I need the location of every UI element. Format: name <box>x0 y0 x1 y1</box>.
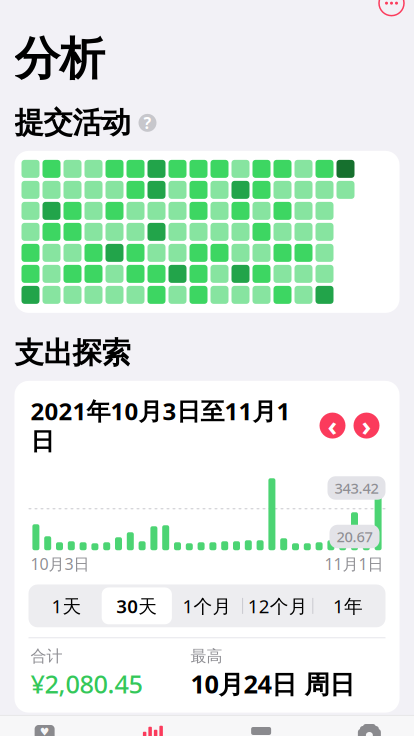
button[interactable]: 设置 <box>315 721 414 736</box>
staticText: ‹ <box>327 408 337 443</box>
staticText: 合计 <box>30 646 62 666</box>
staticText: ♥ <box>40 726 50 736</box>
staticText: 343.42 <box>334 478 378 498</box>
button[interactable]: 1天 <box>31 587 102 624</box>
button[interactable]: ♥ <box>0 721 99 736</box>
button[interactable]: 30天 <box>102 587 172 624</box>
staticText: 2021年10月3日至11月1日 <box>30 395 290 456</box>
button[interactable]: 1个月 <box>172 587 242 624</box>
button[interactable]: Help about commit activity <box>138 112 156 133</box>
button[interactable]: 12个月 <box>242 587 312 624</box>
button[interactable]: Next period <box>349 409 383 443</box>
button[interactable]: 资产 <box>207 721 315 736</box>
staticText: 10月3日 <box>30 553 89 574</box>
staticText: 最高 <box>190 646 222 666</box>
staticText: › <box>361 408 371 443</box>
staticText: 提交活动 <box>14 105 130 141</box>
staticText: 10月24日 周日 <box>190 667 354 700</box>
staticText: 1年 <box>333 593 363 618</box>
staticText: 分析 <box>14 31 104 87</box>
button[interactable]: Previous period <box>315 409 349 443</box>
staticText: 12个月 <box>248 593 308 618</box>
staticText: ? <box>143 112 151 133</box>
staticText: 30天 <box>116 593 157 618</box>
staticText: 支出探索 <box>14 335 130 371</box>
staticText: 1个月 <box>182 593 231 618</box>
staticText: 20.67 <box>336 527 372 546</box>
staticText: ¥2,080.45 <box>30 667 142 700</box>
staticText: 11月1日 <box>324 553 383 574</box>
button[interactable]: 分析 <box>99 721 207 736</box>
button[interactable]: More options <box>371 0 411 23</box>
button[interactable]: 1年 <box>312 587 382 624</box>
staticText: 1天 <box>52 593 82 618</box>
